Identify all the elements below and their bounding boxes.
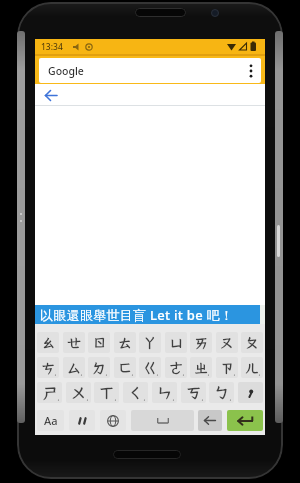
staticText: ,	[105, 367, 108, 378]
staticText: Google	[48, 64, 84, 78]
staticText: ,	[54, 367, 57, 378]
button[interactable]	[131, 410, 194, 431]
button[interactable]	[227, 410, 263, 431]
staticText: ㄖ	[92, 334, 106, 352]
staticText: ㄅ	[214, 383, 230, 403]
staticText: ,	[80, 367, 83, 378]
button[interactable]: ㄉ	[88, 357, 110, 378]
button[interactable]: ㄗ	[216, 357, 238, 378]
staticText: ㄙ	[67, 359, 81, 377]
button[interactable]: ㄘ	[37, 357, 59, 378]
button[interactable]: 以眼還眼舉世目盲 Let it be 吧！	[35, 305, 260, 324]
staticText: ㄝ	[67, 334, 81, 352]
staticText: ,	[182, 367, 185, 378]
button[interactable]: ㄝ	[63, 332, 85, 353]
button[interactable]: Aa	[37, 410, 64, 431]
button[interactable]: ㄞ	[190, 332, 212, 353]
staticText: ,	[233, 367, 236, 378]
button[interactable]: ㄣ	[152, 382, 177, 403]
button[interactable]: ㄊ	[114, 332, 136, 353]
button[interactable]: ㄠ	[37, 332, 59, 353]
staticText: ,	[156, 367, 159, 378]
button[interactable]: ㄍ	[139, 357, 161, 378]
staticText: ㄍ	[143, 359, 157, 377]
button[interactable]: ㄖ	[88, 332, 110, 353]
button[interactable]: Google	[39, 58, 261, 83]
button[interactable]: ㄦ	[241, 357, 263, 378]
staticText: ㄩ	[169, 334, 183, 352]
staticText: ,	[57, 392, 60, 403]
button[interactable]: ㄜ	[165, 357, 187, 378]
button[interactable]: ㄕ	[37, 382, 62, 403]
button[interactable]	[238, 382, 263, 403]
staticText: ㄚ	[143, 334, 157, 352]
staticText: ㄆ	[245, 334, 259, 352]
button[interactable]: ㄒ	[94, 382, 119, 403]
staticText: ㄨ	[71, 383, 87, 403]
staticText: ㄕ	[42, 383, 58, 403]
staticText: ,	[258, 367, 261, 378]
button[interactable]: ㄓ	[190, 357, 212, 378]
button[interactable]	[249, 64, 253, 78]
button[interactable]: ㄨ	[66, 382, 91, 403]
staticText: ㄈ	[118, 359, 132, 377]
staticText: ㄒ	[99, 383, 115, 403]
button[interactable]: ㄩ	[165, 332, 187, 353]
button[interactable]: ㄡ	[216, 332, 238, 353]
staticText: ,	[143, 392, 146, 403]
button[interactable]	[69, 410, 95, 431]
button[interactable]	[198, 410, 222, 431]
button[interactable]: ㄙ	[63, 357, 85, 378]
staticText: ㄓ	[194, 359, 208, 377]
button[interactable]	[45, 90, 58, 101]
button[interactable]: ㄑ	[123, 382, 148, 403]
staticText: 以眼還眼舉世目盲 Let it be 吧！	[40, 306, 234, 324]
button[interactable]: ㄈ	[114, 357, 136, 378]
staticText: ㄣ	[157, 383, 173, 403]
staticText: ,	[201, 392, 204, 403]
staticText: ㄗ	[220, 359, 234, 377]
staticText: ,	[207, 367, 210, 378]
staticText: ㄉ	[92, 359, 106, 377]
staticText: ㄑ	[128, 383, 144, 403]
staticText: ,	[114, 392, 117, 403]
staticText: ㄡ	[220, 334, 234, 352]
staticText: Aa	[44, 413, 58, 428]
staticText: ㄘ	[41, 359, 55, 377]
staticText: ,	[172, 392, 175, 403]
button[interactable]	[100, 410, 126, 431]
button[interactable]: ㄆ	[241, 332, 263, 353]
staticText: ㄦ	[245, 359, 259, 377]
staticText: ,	[86, 392, 89, 403]
staticText: ㄎ	[186, 383, 202, 403]
button[interactable]: ㄎ	[181, 382, 206, 403]
staticText: 13:34	[41, 41, 63, 53]
button[interactable]: ㄅ	[209, 382, 234, 403]
staticText: ㄜ	[169, 359, 183, 377]
staticText: ㄊ	[118, 334, 132, 352]
staticText: ㄞ	[194, 334, 208, 352]
staticText: ㄠ	[41, 334, 55, 352]
staticText: ,	[131, 367, 134, 378]
staticText: ,	[229, 392, 232, 403]
button[interactable]: ㄚ	[139, 332, 161, 353]
